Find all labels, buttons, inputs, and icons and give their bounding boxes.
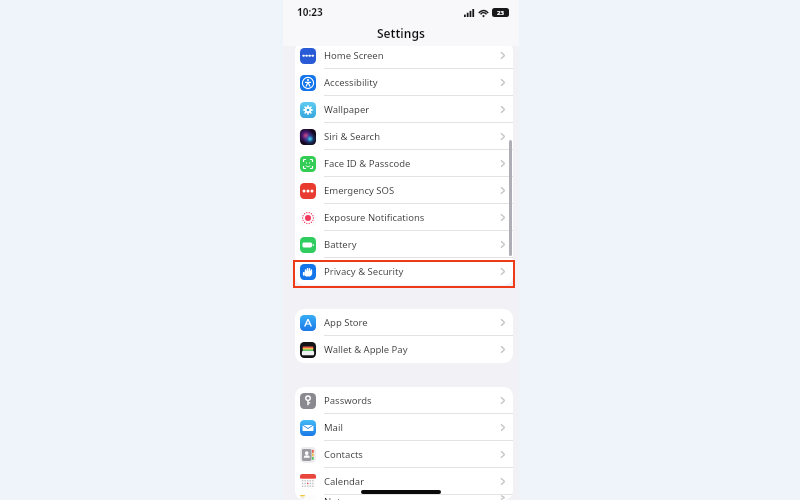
staticText: Calendar xyxy=(324,475,500,488)
button[interactable]: Mail xyxy=(295,414,513,441)
staticText: Mail xyxy=(324,421,500,434)
staticText: 10:23 xyxy=(297,5,323,19)
button[interactable]: Notes xyxy=(295,495,513,500)
staticText: Notes xyxy=(324,495,500,500)
staticText: Wallet & Apple Pay xyxy=(324,343,500,356)
button[interactable]: Passwords xyxy=(295,387,513,414)
staticText: Settings xyxy=(377,25,425,41)
staticText: 23 xyxy=(497,9,504,17)
button[interactable]: Exposure Notifications xyxy=(295,204,513,231)
staticText: App Store xyxy=(324,316,500,329)
staticText: Emergency SOS xyxy=(324,184,500,197)
button[interactable]: Privacy & Security xyxy=(295,258,513,285)
button[interactable]: Wallet & Apple Pay xyxy=(295,336,513,363)
button[interactable]: Emergency SOS xyxy=(295,177,513,204)
button[interactable]: Home Screen xyxy=(295,42,513,69)
staticText: Exposure Notifications xyxy=(324,211,500,224)
staticText: Contacts xyxy=(324,448,500,461)
button[interactable]: Contacts xyxy=(295,441,513,468)
staticText: Accessibility xyxy=(324,76,500,89)
staticText: Battery xyxy=(324,238,500,251)
button[interactable]: Face ID & Passcode xyxy=(295,150,513,177)
button[interactable]: Calendar xyxy=(295,468,513,495)
other: Wi-Fi xyxy=(478,8,489,17)
button[interactable]: Battery xyxy=(295,231,513,258)
staticText: Passwords xyxy=(324,394,500,407)
button[interactable]: Accessibility xyxy=(295,69,513,96)
button[interactable]: Wallpaper xyxy=(295,96,513,123)
button[interactable]: App Store xyxy=(295,309,513,336)
staticText: Face ID & Passcode xyxy=(324,157,500,170)
staticText: Privacy & Security xyxy=(324,265,500,278)
other: Cellular signal xyxy=(464,9,475,17)
staticText: Home Screen xyxy=(324,49,500,62)
button[interactable]: Siri & Search xyxy=(295,123,513,150)
staticText: Wallpaper xyxy=(324,103,500,116)
staticText: Siri & Search xyxy=(324,130,500,143)
